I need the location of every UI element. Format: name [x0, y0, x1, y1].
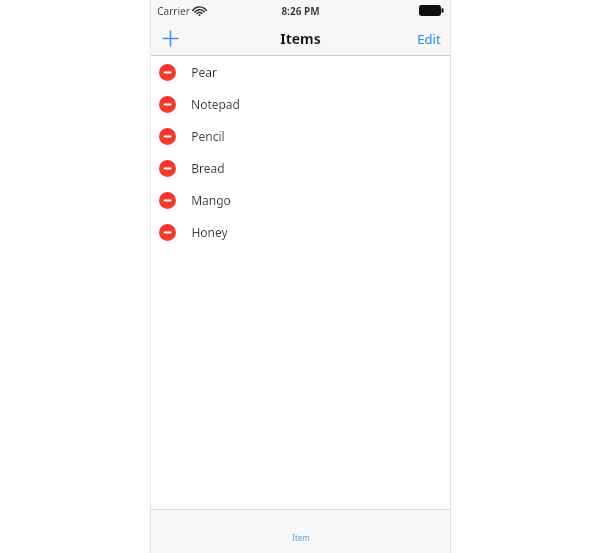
button[interactable]: Delete Honey — [150, 216, 451, 248]
button[interactable]: Delete Pear — [159, 64, 176, 81]
button[interactable]: Delete Honey — [159, 224, 176, 241]
staticText: Notepad — [191, 96, 240, 112]
staticText: Mango — [191, 192, 231, 208]
button[interactable]: Delete Notepad — [150, 88, 451, 120]
staticText: Pear — [191, 64, 217, 80]
button[interactable]: Delete Mango — [150, 184, 451, 216]
button[interactable]: Item — [292, 532, 310, 543]
button[interactable]: Edit — [407, 21, 451, 56]
staticText: Pencil — [191, 128, 225, 144]
staticText: Bread — [191, 160, 225, 176]
staticText: Items — [280, 29, 321, 48]
button[interactable]: Delete Pencil — [150, 120, 451, 152]
button[interactable]: Add item — [150, 21, 190, 56]
staticText: Edit — [417, 30, 441, 48]
button[interactable]: Delete Pencil — [159, 128, 176, 145]
button[interactable]: Delete Bread — [150, 152, 451, 184]
staticText: Item — [292, 532, 310, 543]
button[interactable]: Delete Bread — [159, 160, 176, 177]
button[interactable]: Delete Notepad — [159, 96, 176, 113]
staticText: 8:26 PM — [281, 4, 320, 18]
staticText: Carrier — [157, 4, 190, 18]
staticText: Honey — [191, 224, 228, 240]
button[interactable]: Delete Pear — [150, 56, 451, 88]
button[interactable]: Delete Mango — [159, 192, 176, 209]
